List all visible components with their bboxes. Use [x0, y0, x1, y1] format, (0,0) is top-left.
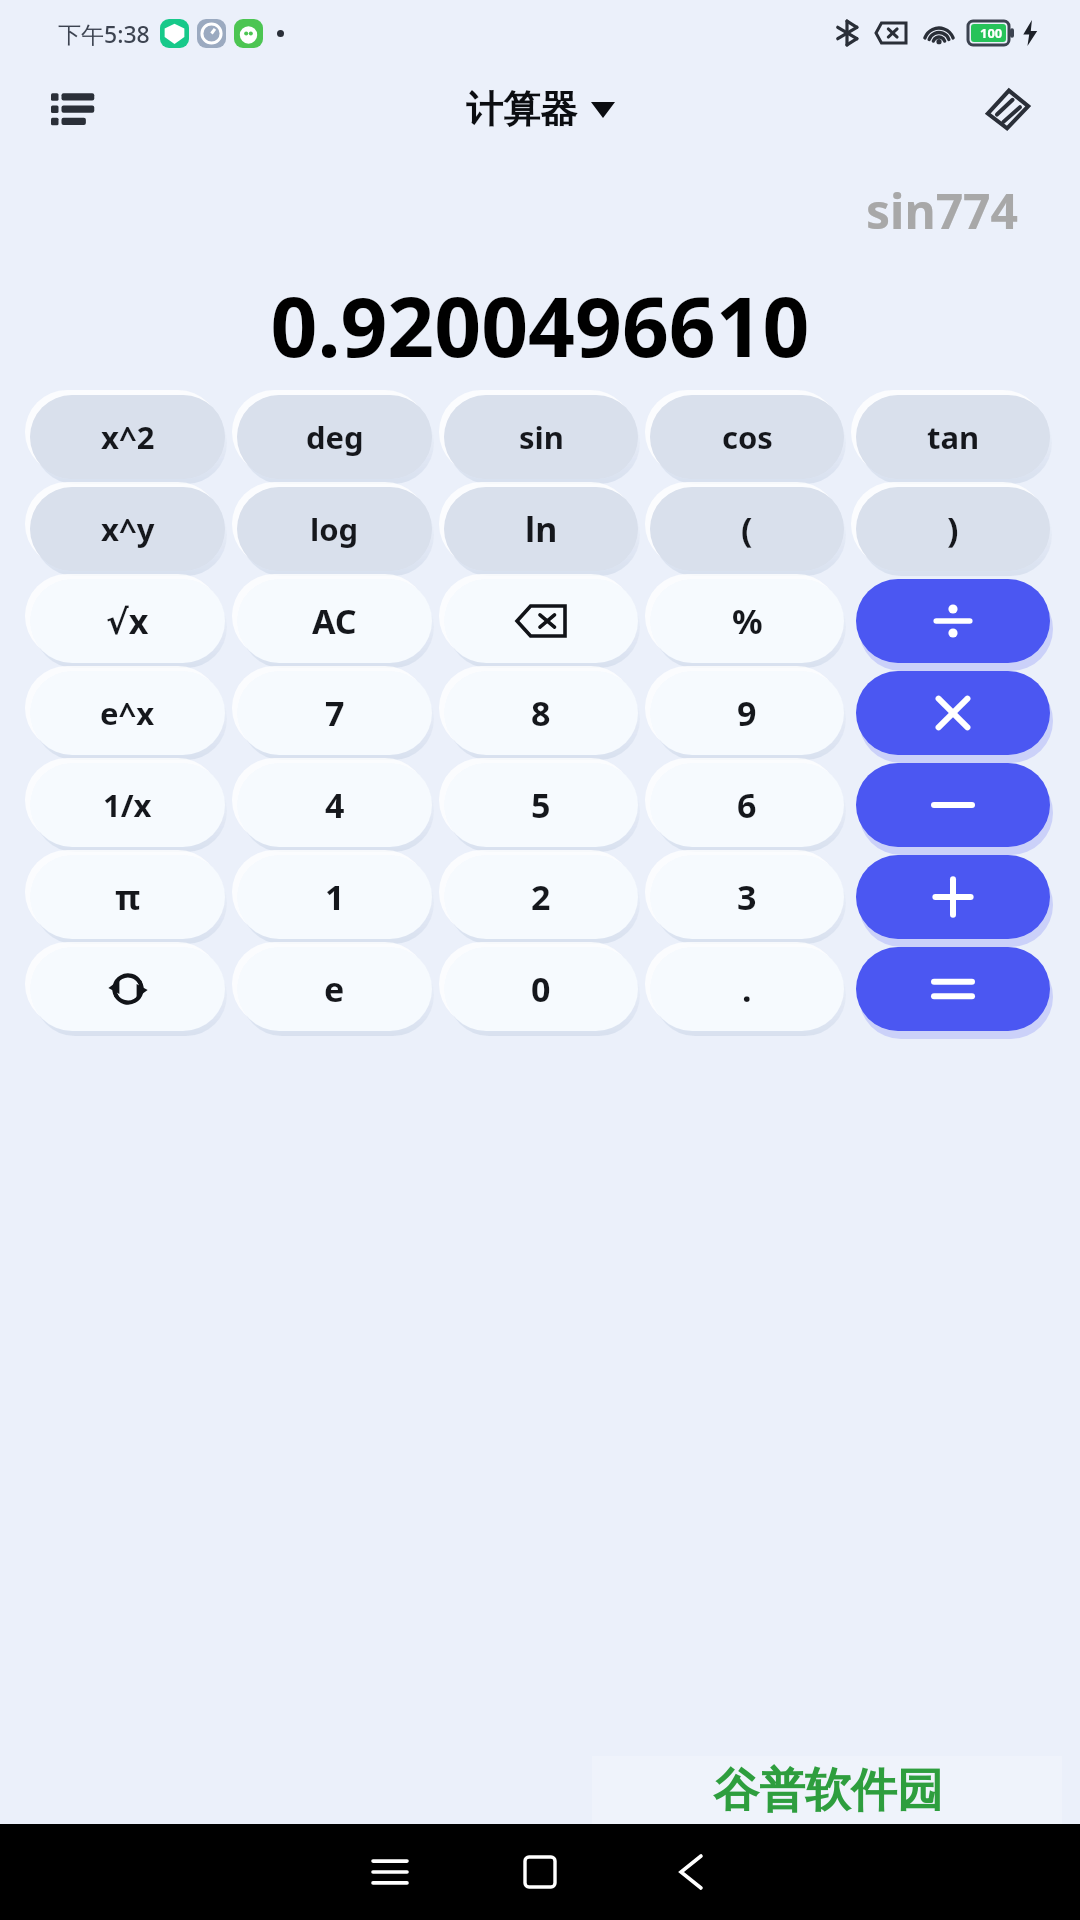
staticText: log — [310, 508, 359, 550]
staticText: 谷普软件园 — [713, 1762, 943, 1820]
button[interactable]: 计算器 — [466, 86, 615, 133]
staticText: 0.9200496610 — [0, 269, 1080, 381]
button[interactable]: Theme — [978, 79, 1038, 139]
button[interactable]: e — [237, 947, 432, 1031]
staticText: 6 — [737, 782, 757, 828]
other: Multiply — [856, 671, 1050, 755]
button[interactable]: 0 — [444, 947, 638, 1031]
other: Plus — [856, 855, 1050, 939]
staticText: 3 — [737, 874, 757, 920]
button[interactable]: 4 — [237, 763, 432, 847]
other: Switch mode — [30, 947, 225, 1031]
button[interactable] — [856, 855, 1050, 939]
button[interactable]: History — [44, 81, 100, 137]
button[interactable]: e^x — [30, 671, 225, 755]
button[interactable]: x^y — [30, 487, 225, 571]
staticText: ) — [947, 506, 959, 552]
button[interactable]: AC — [237, 579, 432, 663]
staticText: √x — [106, 598, 149, 644]
button[interactable]: cos — [650, 395, 844, 479]
button[interactable]: 3 — [650, 855, 844, 939]
button[interactable]: √x — [30, 579, 225, 663]
staticText: 9 — [737, 690, 757, 736]
button[interactable]: . — [650, 947, 844, 1031]
button[interactable]: tan — [856, 395, 1050, 479]
staticText: 0 — [531, 966, 551, 1012]
other: Minus — [856, 763, 1050, 847]
staticText: 4 — [325, 782, 345, 828]
staticText: x^y — [101, 508, 155, 550]
button[interactable] — [856, 763, 1050, 847]
button[interactable] — [856, 947, 1050, 1031]
button[interactable]: deg — [237, 395, 432, 479]
staticText: e — [324, 966, 345, 1012]
button[interactable]: log — [237, 487, 432, 571]
button[interactable]: 6 — [650, 763, 844, 847]
button[interactable]: ln — [444, 487, 638, 571]
button[interactable]: Home — [505, 1837, 575, 1907]
staticText: 下午5:38 — [58, 18, 150, 49]
staticText: AC — [312, 598, 357, 644]
staticText: tan — [927, 416, 980, 458]
button[interactable] — [30, 947, 225, 1031]
staticText: π — [115, 874, 141, 920]
other: Equals — [856, 947, 1050, 1031]
staticText: 1/x — [103, 784, 152, 826]
staticText: ( — [741, 506, 753, 552]
staticText: % — [732, 598, 763, 644]
staticText: 计算器 — [466, 86, 577, 133]
button[interactable]: 1 — [237, 855, 432, 939]
button[interactable]: 2 — [444, 855, 638, 939]
staticText: ln — [525, 506, 558, 552]
button[interactable]: Recents — [355, 1837, 425, 1907]
button[interactable]: 1/x — [30, 763, 225, 847]
button[interactable]: sin — [444, 395, 638, 479]
button[interactable] — [856, 579, 1050, 663]
staticText: cos — [722, 416, 773, 458]
button[interactable]: 7 — [237, 671, 432, 755]
button[interactable] — [856, 671, 1050, 755]
staticText: sin774 — [0, 178, 1018, 243]
staticText: e^x — [100, 692, 155, 734]
staticText: sin — [519, 416, 564, 458]
staticText: 1 — [325, 874, 345, 920]
staticText: . — [742, 966, 752, 1012]
button[interactable]: ( — [650, 487, 844, 571]
button[interactable]: π — [30, 855, 225, 939]
button[interactable] — [444, 579, 638, 663]
button[interactable]: Back — [655, 1837, 725, 1907]
button[interactable]: 5 — [444, 763, 638, 847]
staticText: 2 — [531, 874, 551, 920]
button[interactable]: 9 — [650, 671, 844, 755]
staticText: 100 — [980, 24, 1003, 42]
staticText: deg — [306, 416, 364, 458]
button[interactable]: % — [650, 579, 844, 663]
staticText: 7 — [325, 690, 345, 736]
other: Divide — [856, 579, 1050, 663]
button[interactable]: x^2 — [30, 395, 225, 479]
staticText: www.gupuxlazal.com — [689, 1820, 966, 1855]
staticText: 8 — [531, 690, 551, 736]
button[interactable]: ) — [856, 487, 1050, 571]
other: Backspace — [444, 579, 638, 663]
staticText: 5 — [531, 782, 551, 828]
staticText: x^2 — [101, 416, 155, 458]
button[interactable]: 8 — [444, 671, 638, 755]
